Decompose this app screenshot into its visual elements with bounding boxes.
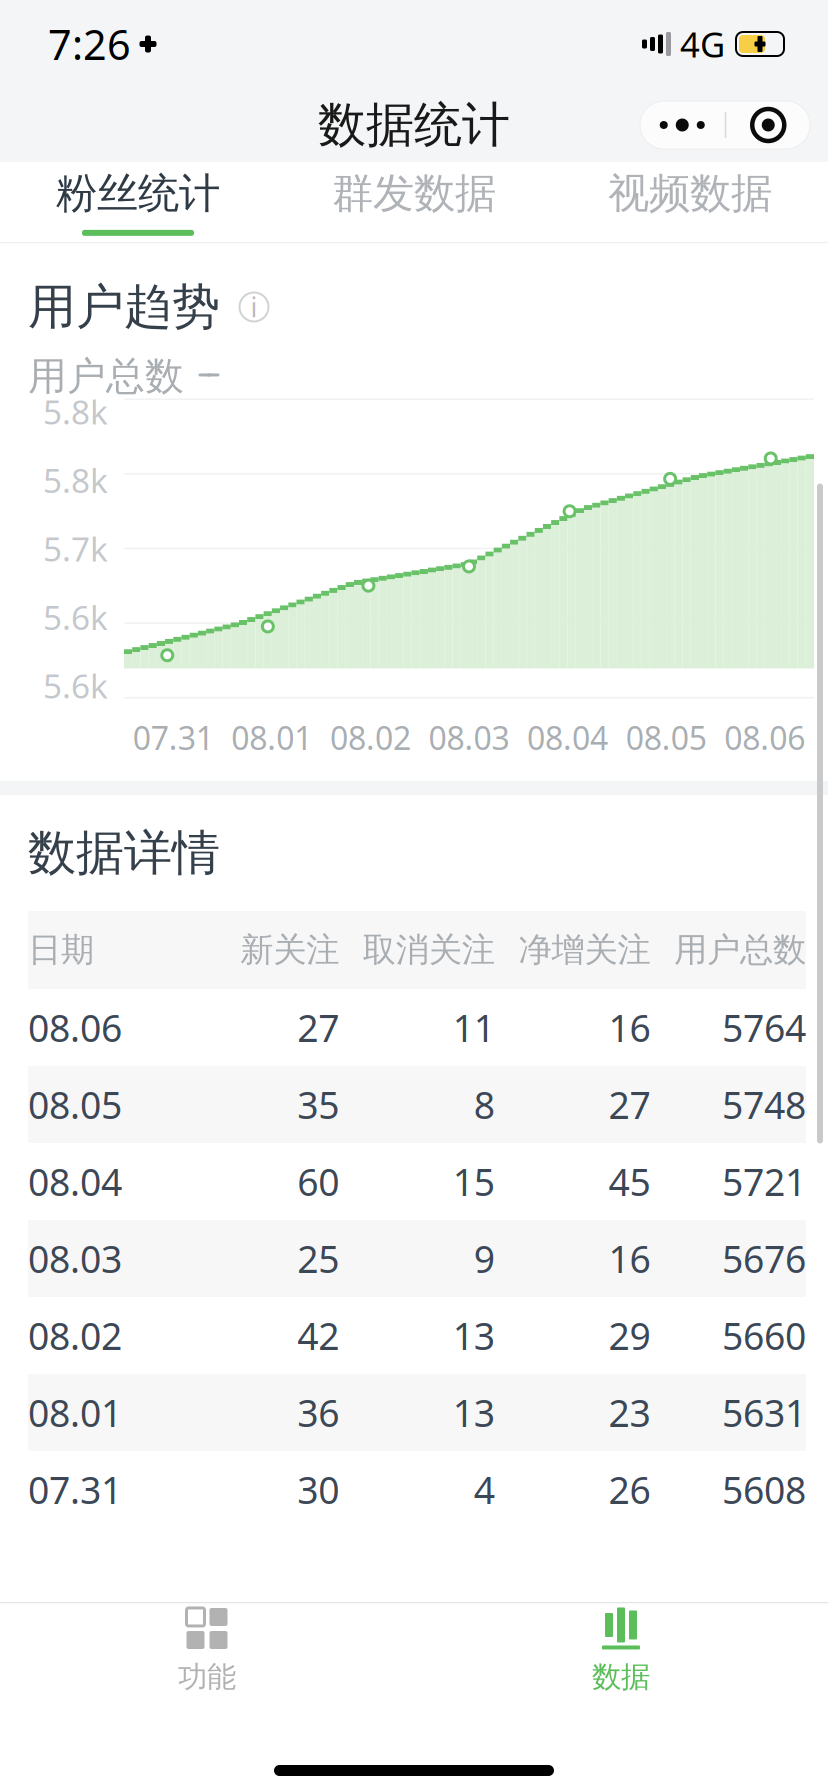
staticText: 5660 — [722, 1311, 806, 1360]
staticText: 45 — [608, 1157, 650, 1206]
staticText: 5608 — [722, 1465, 806, 1514]
staticText: 5.6k — [43, 595, 108, 639]
button[interactable]: About user trend — [236, 289, 272, 325]
staticText: 08.06 — [724, 716, 805, 759]
staticText: 29 — [608, 1311, 650, 1360]
staticText: 13 — [453, 1388, 495, 1437]
staticText: 60 — [297, 1157, 339, 1206]
staticText: 15 — [453, 1157, 495, 1206]
button[interactable]: 群发数据 — [276, 162, 552, 242]
staticText: 5764 — [722, 1003, 806, 1052]
staticText: 用户总数 — [28, 353, 184, 400]
staticText: 视频数据 — [608, 168, 772, 219]
staticText: 07.31 — [28, 1465, 122, 1514]
staticText: 08.01 — [28, 1388, 122, 1437]
staticText: 08.02 — [28, 1311, 122, 1360]
staticText: 4 — [474, 1465, 495, 1514]
staticText: 08.03 — [28, 1234, 122, 1283]
staticText: 27 — [297, 1003, 339, 1052]
staticText: 08.04 — [28, 1157, 122, 1206]
staticText: 16 — [608, 1234, 650, 1283]
staticText: 用户趋势 — [28, 277, 220, 336]
staticText: 5.8k — [43, 389, 108, 434]
staticText: 数据统计 — [318, 95, 510, 154]
staticText: 27 — [608, 1080, 650, 1129]
staticText: 新关注 — [240, 929, 339, 970]
staticText: 07.31 — [133, 716, 214, 759]
staticText: 25 — [297, 1234, 339, 1283]
staticText: 23 — [608, 1388, 650, 1437]
staticText: 13 — [453, 1311, 495, 1360]
staticText: 粉丝统计 — [56, 168, 220, 219]
button[interactable]: 用户总数 — [0, 336, 828, 398]
staticText: 5748 — [722, 1080, 806, 1129]
staticText: 16 — [608, 1003, 650, 1052]
button[interactable]: 功能 — [0, 1603, 414, 1699]
staticText: 数据详情 — [28, 823, 220, 882]
staticText: 42 — [297, 1311, 339, 1360]
staticText: 9 — [474, 1234, 495, 1283]
staticText: 26 — [608, 1465, 650, 1514]
staticText: 7:26 — [48, 17, 131, 71]
staticText: 36 — [297, 1388, 339, 1437]
staticText: i — [250, 289, 257, 325]
staticText: 5.8k — [43, 458, 108, 502]
staticText: 5.7k — [43, 526, 108, 571]
staticText: 5721 — [722, 1157, 806, 1206]
staticText: 08.05 — [28, 1080, 122, 1129]
staticText: 5676 — [722, 1234, 806, 1283]
staticText: 5631 — [722, 1388, 806, 1437]
staticText: 日期 — [28, 929, 94, 970]
button[interactable]: 粉丝统计 — [0, 162, 276, 242]
staticText: 取消关注 — [363, 929, 495, 970]
staticText: 4G — [680, 21, 725, 67]
staticText: 功能 — [178, 1659, 236, 1695]
staticText: 08.05 — [626, 716, 707, 759]
staticText: 08.02 — [330, 716, 411, 759]
staticText: 群发数据 — [332, 168, 496, 219]
staticText: 08.01 — [231, 716, 312, 759]
staticText: 5.6k — [43, 663, 108, 708]
staticText: 08.06 — [28, 1003, 122, 1052]
staticText: 净增关注 — [518, 929, 650, 970]
staticText: 30 — [297, 1465, 339, 1514]
staticText: 数据 — [592, 1659, 650, 1695]
staticText: 08.04 — [527, 716, 608, 759]
staticText: 8 — [474, 1080, 495, 1129]
button[interactable]: More and Close — [640, 101, 810, 149]
staticText: 用户总数 — [674, 929, 806, 970]
staticText: 08.03 — [428, 716, 509, 759]
button[interactable]: 数据 — [414, 1603, 828, 1699]
staticText: 11 — [453, 1003, 495, 1052]
staticText: 35 — [297, 1080, 339, 1129]
button[interactable]: 视频数据 — [552, 162, 828, 242]
